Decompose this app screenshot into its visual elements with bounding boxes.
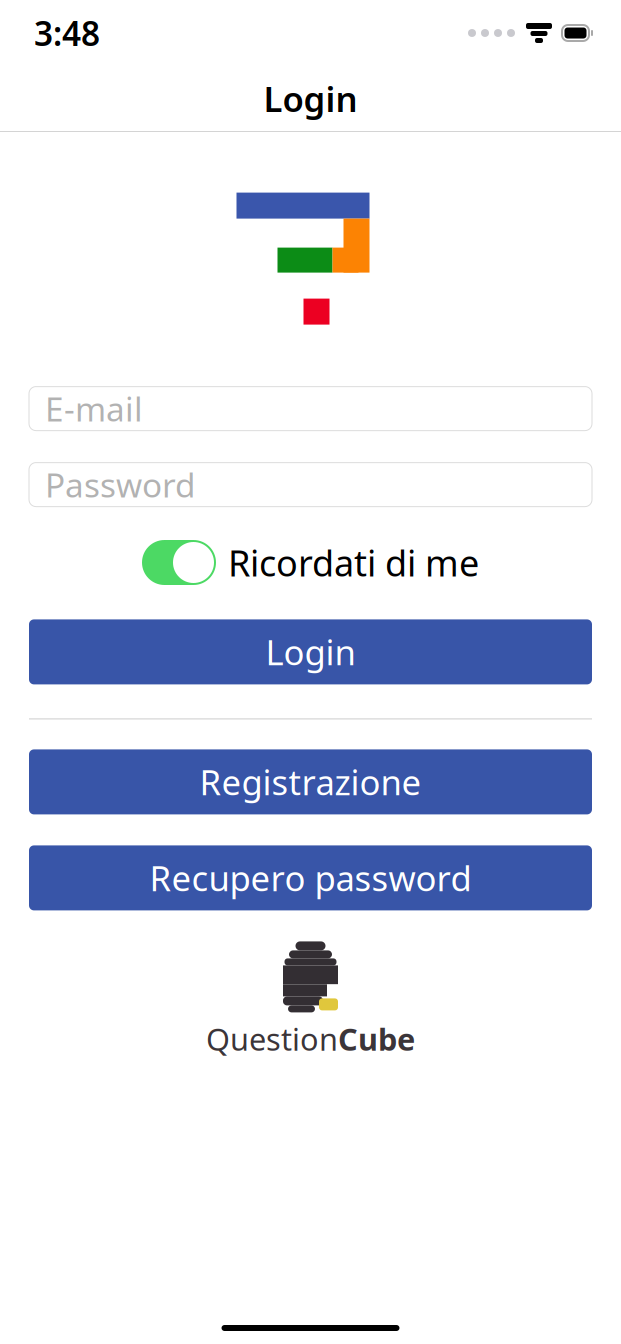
staticText: Registrazione	[199, 759, 421, 805]
button[interactable]: Ricordati di me	[142, 536, 479, 589]
staticText: Cube	[338, 1018, 415, 1059]
staticText: E-mail	[45, 386, 143, 431]
staticText: Login	[265, 629, 355, 675]
staticText: Recupero password	[149, 855, 471, 901]
staticText: Ricordati di me	[228, 539, 479, 586]
staticText: 3:48	[34, 11, 100, 55]
button[interactable]: Registrazione	[0, 749, 621, 814]
staticText: Password	[45, 462, 196, 507]
staticText: Login	[263, 75, 357, 121]
staticText: Question	[206, 1018, 338, 1059]
button[interactable]: Recupero password	[0, 845, 621, 910]
button[interactable]: Login	[0, 619, 621, 684]
